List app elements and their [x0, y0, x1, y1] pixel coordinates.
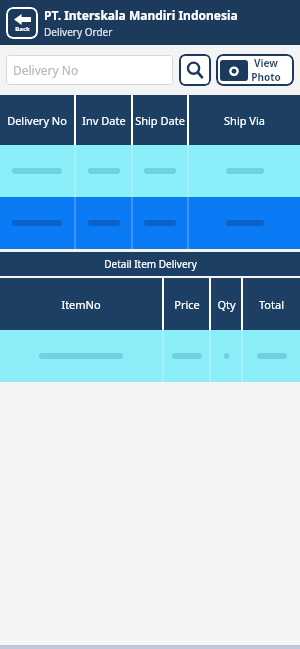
button[interactable]: Back [6, 7, 38, 39]
staticText: View [254, 56, 278, 70]
button[interactable] [0, 197, 300, 249]
staticText: Ship Date [135, 113, 185, 128]
button[interactable]: Search [179, 54, 211, 86]
staticText: Detail Item Delivery [104, 257, 197, 271]
staticText: Price [174, 297, 200, 312]
staticText: Qty [217, 297, 236, 312]
staticText: Delivery Order [44, 25, 113, 39]
staticText: PT. Interskala Mandiri Indonesia [44, 7, 238, 23]
button[interactable] [0, 330, 300, 382]
staticText: Delivery No [7, 113, 67, 128]
button[interactable]: View [216, 54, 294, 86]
staticText: ItemNo [61, 297, 101, 312]
staticText: Back [15, 25, 30, 33]
button[interactable] [0, 145, 300, 197]
staticText: Photo [251, 70, 281, 84]
staticText: Delivery No [13, 62, 79, 78]
staticText: Inv Date [82, 113, 126, 128]
button[interactable]: Delivery No [6, 55, 173, 85]
button[interactable]: Detail Item Delivery [0, 252, 300, 276]
staticText: Total [259, 297, 284, 312]
staticText: Ship Via [224, 113, 265, 128]
